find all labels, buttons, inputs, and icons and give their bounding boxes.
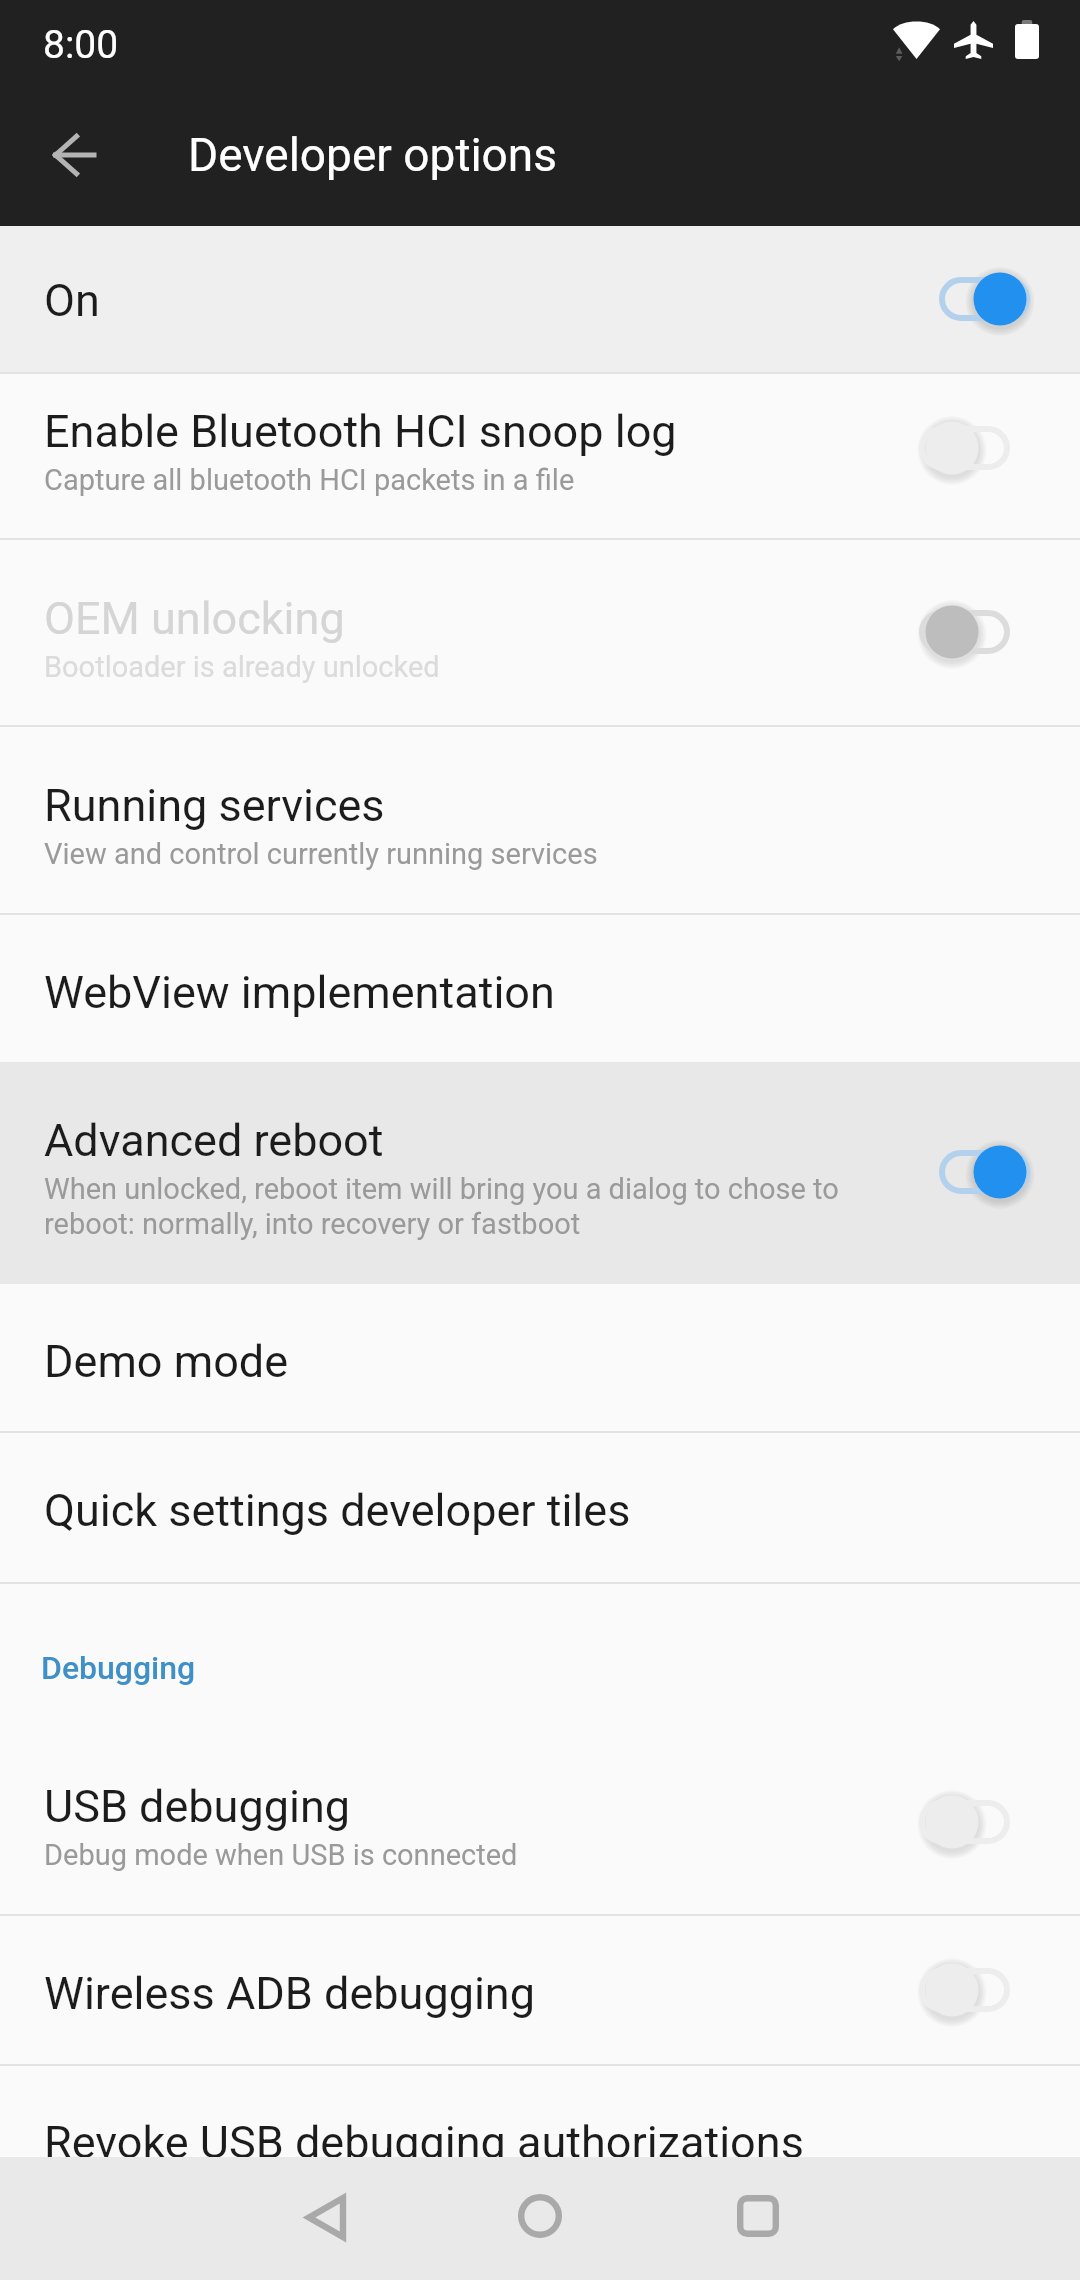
staticText: OEM unlocking (44, 592, 345, 645)
staticText: Quick settings developer tiles (44, 1484, 631, 1537)
button[interactable]: Demo mode (0, 1284, 1080, 1431)
button[interactable]: Toggle (905, 1124, 1057, 1220)
staticText: Enable Bluetooth HCI snoop log (44, 405, 677, 458)
button[interactable]: On (0, 226, 1080, 372)
staticText: Advanced reboot (44, 1114, 384, 1167)
button[interactable]: Home (486, 2157, 594, 2280)
staticText: WebView implementation (44, 966, 555, 1019)
button[interactable]: WebView implementation (0, 915, 1080, 1062)
button[interactable]: OEM unlocking (0, 540, 1080, 725)
button[interactable]: Toggle (905, 584, 1057, 680)
button[interactable]: Wireless ADB debugging (0, 1916, 1080, 2064)
button[interactable]: Enable Bluetooth HCI snoop log (0, 374, 1080, 538)
staticText: Revoke USB debugging authorizations (44, 2116, 804, 2169)
button[interactable]: Recent apps (594, 2157, 918, 2280)
staticText: Developer options (188, 128, 557, 182)
button[interactable]: Revoke USB debugging authorizations (0, 2066, 1080, 2214)
staticText: View and control currently running servi… (44, 837, 598, 871)
staticText: 8:00 (43, 22, 119, 68)
button[interactable]: USB debugging (0, 1731, 1080, 1914)
button[interactable]: Running services (0, 727, 1080, 913)
button[interactable]: Back (162, 2157, 486, 2280)
staticText: Debug mode when USB is connected (44, 1838, 518, 1872)
staticText: Bootloader is already unlocked (44, 650, 440, 684)
staticText: Running services (44, 779, 385, 832)
staticText: reboot: normally, into recovery or fastb… (44, 1207, 581, 1241)
staticText: USB debugging (44, 1780, 351, 1833)
staticText: Capture all bluetooth HCI packets in a f… (44, 463, 575, 497)
button[interactable]: Toggle (905, 251, 1057, 347)
staticText: When unlocked, reboot item will bring yo… (44, 1172, 839, 1206)
button[interactable]: Toggle (905, 1774, 1057, 1870)
button[interactable]: Navigate up (25, 106, 123, 204)
button[interactable]: Toggle (905, 1942, 1057, 2038)
button[interactable]: Toggle (905, 400, 1057, 496)
staticText: On (44, 274, 100, 327)
button[interactable]: Quick settings developer tiles (0, 1433, 1080, 1582)
button[interactable]: Advanced reboot (0, 1062, 1080, 1284)
staticText: Wireless ADB debugging (44, 1967, 535, 2020)
staticText: Demo mode (44, 1335, 289, 1388)
staticText: Debugging (41, 1649, 196, 1687)
